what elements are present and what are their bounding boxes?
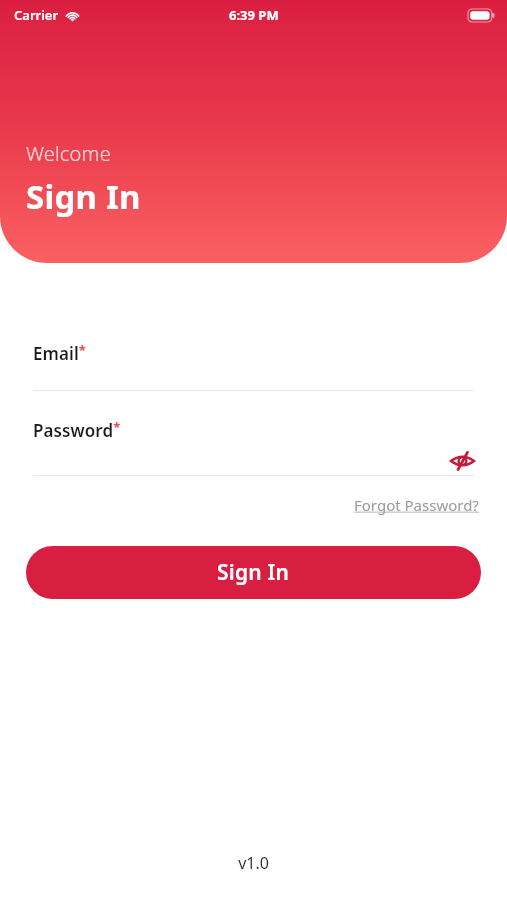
staticText: 6:39 PM (229, 6, 279, 24)
staticText: Forgot Password? (354, 495, 479, 515)
button[interactable]: Forgot Password? (352, 493, 481, 517)
staticText: v1.0 (238, 852, 269, 874)
button[interactable]: Sign In (26, 546, 481, 599)
staticText: Password* (33, 418, 121, 442)
staticText: Sign In (26, 174, 141, 219)
staticText: Carrier (14, 6, 59, 24)
staticText: Sign In (217, 558, 290, 587)
staticText: Welcome (26, 140, 111, 167)
button[interactable]: Show password (444, 448, 480, 473)
staticText: Email* (33, 341, 87, 365)
